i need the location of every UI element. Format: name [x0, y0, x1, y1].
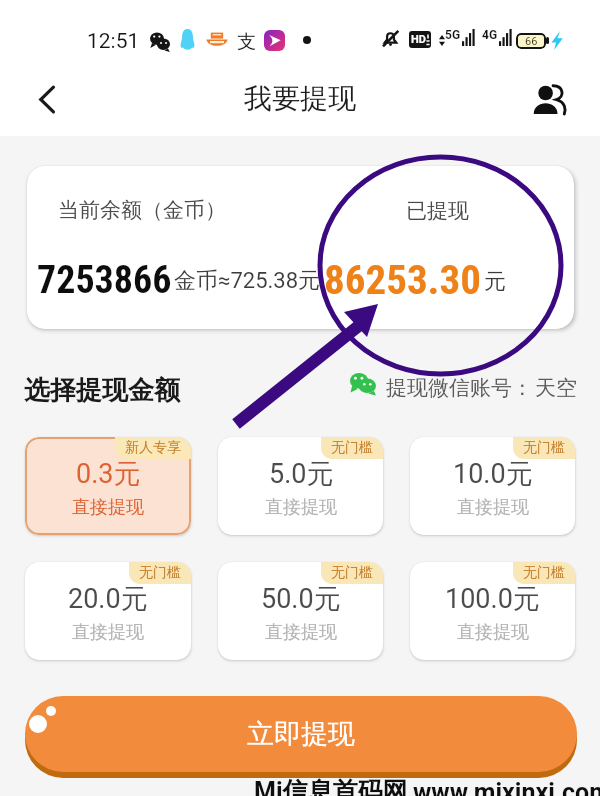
staticText: 无门槛 — [139, 564, 181, 582]
staticText: 我要提现 — [244, 81, 356, 116]
staticText: 提现微信账号： — [386, 375, 533, 401]
staticText: 7253866 — [37, 258, 172, 303]
staticText: Mi信息首码网 — [254, 776, 408, 796]
staticText: 50.0元 — [261, 582, 341, 616]
staticText: 86253.30 — [324, 256, 481, 304]
staticText: 新人专享 — [125, 439, 181, 457]
button[interactable]: 100.0元 — [410, 562, 575, 660]
staticText: 已提现 — [406, 198, 469, 224]
staticText: 12:51 — [87, 29, 140, 54]
button[interactable]: 0.3元 — [25, 437, 191, 535]
staticText: 选择提现金额 — [24, 374, 180, 407]
button[interactable]: Account — [526, 76, 572, 122]
staticText: 10.0元 — [453, 457, 533, 491]
staticText: 20.0元 — [68, 582, 148, 616]
staticText: 100.0元 — [445, 582, 540, 616]
staticText: 天空 — [535, 375, 577, 401]
staticText: 直接提现 — [72, 621, 144, 644]
button[interactable]: 立即提现 — [25, 696, 577, 772]
staticText: 金币≈725.38元 — [174, 267, 321, 295]
staticText: 直接提现 — [72, 496, 144, 519]
staticText: 4G — [482, 28, 498, 42]
staticText: HD — [411, 33, 426, 46]
button[interactable]: 5.0元 — [218, 437, 383, 535]
button[interactable]: 50.0元 — [218, 562, 383, 660]
staticText: 5.0元 — [269, 457, 334, 491]
button[interactable]: 20.0元 — [25, 562, 191, 660]
staticText: 0.3元 — [76, 457, 141, 491]
staticText: 元 — [484, 268, 506, 296]
staticText: 当前余额（金币） — [58, 197, 226, 223]
staticText: 无门槛 — [331, 564, 373, 582]
staticText: www.mixinxi.com — [413, 778, 600, 796]
staticText: 直接提现 — [265, 496, 337, 519]
staticText: 5G — [445, 28, 461, 42]
staticText: 无门槛 — [523, 439, 565, 457]
staticText: 66 — [525, 35, 538, 48]
staticText: 支 — [237, 30, 256, 54]
staticText: 直接提现 — [457, 496, 529, 519]
staticText: 无门槛 — [331, 439, 373, 457]
staticText: 直接提现 — [457, 621, 529, 644]
button[interactable]: 10.0元 — [410, 437, 575, 535]
staticText: 无门槛 — [523, 564, 565, 582]
button[interactable]: Back — [24, 76, 70, 122]
staticText: 直接提现 — [265, 621, 337, 644]
staticText: 立即提现 — [247, 717, 355, 751]
